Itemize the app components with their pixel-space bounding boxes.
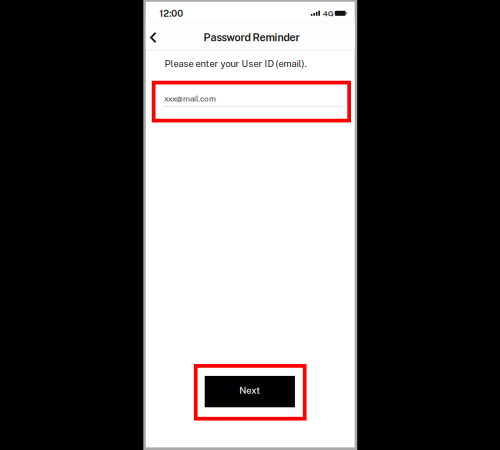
staticText: Next [239,385,260,396]
staticText: 12:00 [159,8,183,19]
button[interactable]: Back [145,26,165,52]
button[interactable]: Next [205,376,295,407]
staticText: xxx@mail.com [164,94,216,103]
staticText: 4G [323,9,334,18]
staticText: Please enter your User ID (email). [165,58,307,69]
staticText: Password Reminder [204,31,300,44]
